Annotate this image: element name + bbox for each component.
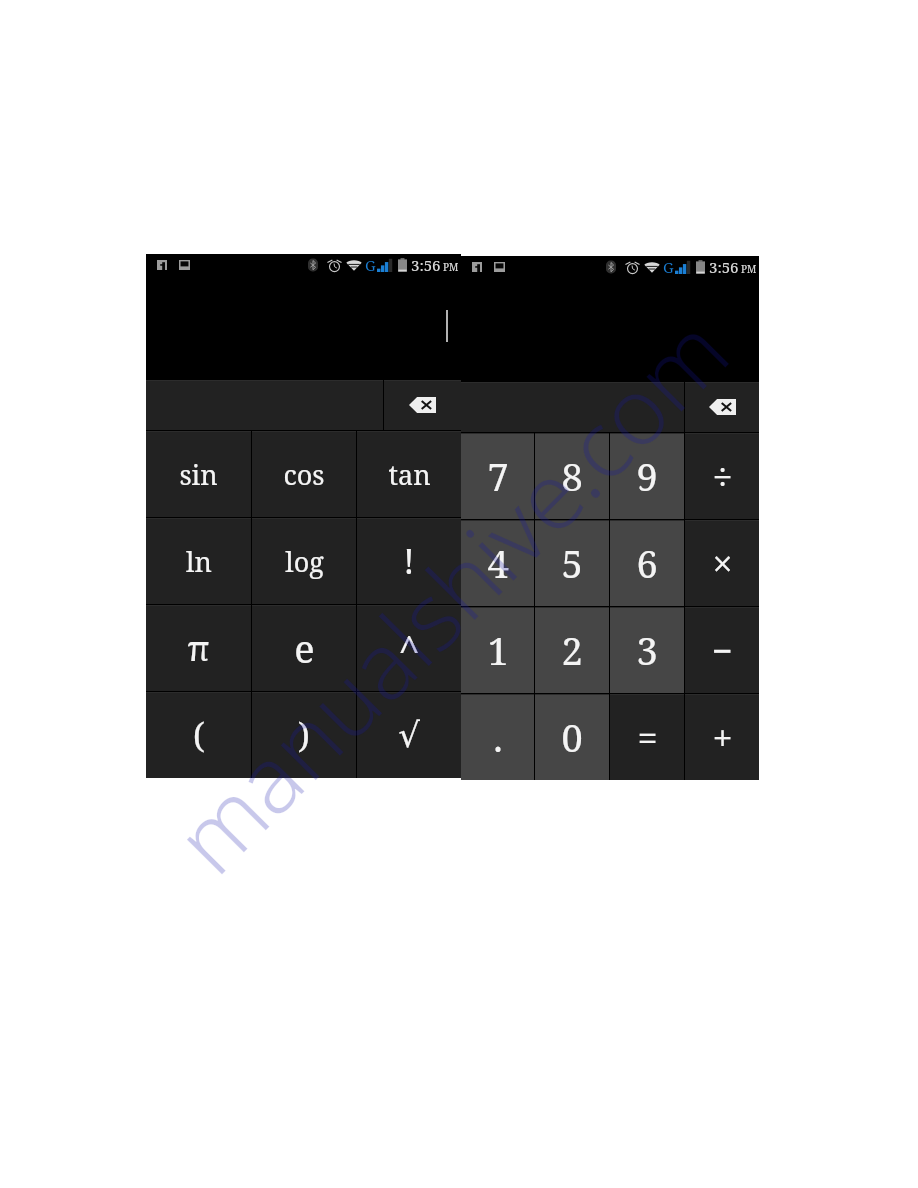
button[interactable]: 3 bbox=[610, 607, 684, 693]
staticText: sin bbox=[179, 456, 218, 493]
button[interactable]: ^ bbox=[357, 605, 461, 691]
staticText: e bbox=[294, 622, 315, 674]
staticText: 7 bbox=[487, 450, 509, 502]
staticText: + bbox=[712, 713, 733, 762]
button[interactable]: Backspace bbox=[384, 380, 461, 430]
button[interactable]: tan bbox=[357, 431, 461, 517]
button[interactable]: ) bbox=[252, 692, 356, 778]
staticText: 6 bbox=[636, 537, 658, 589]
button[interactable]: + bbox=[685, 694, 759, 780]
staticText: 3:56 bbox=[709, 257, 739, 277]
staticText: 3:56 bbox=[411, 255, 441, 275]
button[interactable]: = bbox=[610, 694, 684, 780]
staticText: PM bbox=[741, 262, 757, 276]
button[interactable]: e bbox=[252, 605, 356, 691]
staticText: π bbox=[187, 625, 210, 671]
staticText: 9 bbox=[636, 450, 658, 502]
staticText: − bbox=[712, 626, 733, 675]
button[interactable]: 1 bbox=[461, 607, 534, 693]
staticText: × bbox=[712, 539, 733, 588]
button[interactable]: 0 bbox=[535, 694, 609, 780]
staticText: PM bbox=[443, 260, 459, 274]
button[interactable]: Backspace bbox=[685, 382, 759, 432]
button[interactable]: log bbox=[252, 518, 356, 604]
button[interactable]: ln bbox=[146, 518, 251, 604]
staticText: ) bbox=[298, 712, 310, 758]
button[interactable]: sin bbox=[146, 431, 251, 517]
staticText: 8 bbox=[561, 450, 583, 502]
button[interactable]: ( bbox=[146, 692, 251, 778]
button[interactable]: 2 bbox=[535, 607, 609, 693]
button[interactable]: 8 bbox=[535, 433, 609, 519]
button[interactable]: 7 bbox=[461, 433, 534, 519]
staticText: . bbox=[493, 711, 503, 763]
staticText: √ bbox=[398, 715, 420, 755]
staticText: 4 bbox=[487, 537, 509, 589]
button[interactable]: 9 bbox=[610, 433, 684, 519]
staticText: ( bbox=[193, 712, 205, 758]
staticText: 5 bbox=[561, 537, 583, 589]
button[interactable]: √ bbox=[357, 692, 461, 778]
button[interactable]: 4 bbox=[461, 520, 534, 606]
staticText: ÷ bbox=[712, 452, 733, 501]
button[interactable]: ÷ bbox=[685, 433, 759, 519]
staticText: ! bbox=[403, 538, 415, 584]
staticText: manualshive.com bbox=[146, 288, 755, 900]
button[interactable]: ! bbox=[357, 518, 461, 604]
staticText: = bbox=[637, 713, 658, 762]
staticText: 0 bbox=[561, 711, 583, 763]
button[interactable]: × bbox=[685, 520, 759, 606]
staticText: tan bbox=[388, 456, 431, 493]
staticText: G bbox=[365, 255, 376, 275]
button[interactable]: 5 bbox=[535, 520, 609, 606]
staticText: 3 bbox=[636, 624, 658, 676]
button[interactable]: π bbox=[146, 605, 251, 691]
button[interactable]: − bbox=[685, 607, 759, 693]
staticText: cos bbox=[283, 456, 325, 493]
staticText: G bbox=[663, 257, 674, 277]
staticText: 1 bbox=[487, 624, 509, 676]
staticText: ^ bbox=[398, 622, 420, 674]
staticText: log bbox=[285, 543, 324, 580]
button[interactable]: 6 bbox=[610, 520, 684, 606]
staticText: ln bbox=[186, 543, 212, 580]
button[interactable]: cos bbox=[252, 431, 356, 517]
staticText: 2 bbox=[561, 624, 583, 676]
button[interactable]: . bbox=[461, 694, 534, 780]
